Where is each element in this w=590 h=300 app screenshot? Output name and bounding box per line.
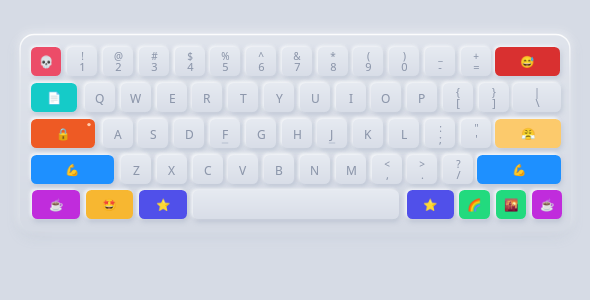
staticText: 2 (115, 59, 122, 74)
button[interactable]: # 3 (139, 47, 169, 76)
staticText: V (239, 162, 247, 178)
button[interactable]: A (103, 119, 133, 148)
button[interactable]: M (336, 155, 366, 184)
button[interactable]: R (192, 83, 222, 112)
button[interactable]: X (157, 155, 187, 184)
button[interactable]: T (228, 83, 258, 112)
staticText: [ (456, 95, 460, 110)
button[interactable]: B (264, 155, 294, 184)
button[interactable]: : ; (425, 119, 455, 148)
button[interactable]: % 5 (210, 47, 240, 76)
button[interactable]: D (174, 119, 204, 148)
button[interactable]: } ] (479, 83, 509, 112)
staticText: 7 (294, 59, 301, 74)
staticText: ☕ (540, 198, 555, 212)
button[interactable]: ? / (443, 155, 473, 184)
staticText: 🤩 (102, 198, 117, 212)
button[interactable]: @ 2 (103, 47, 133, 76)
staticText: ( (367, 49, 370, 63)
staticText: # (151, 49, 158, 63)
staticText: E (169, 90, 176, 106)
staticText: 6 (258, 59, 265, 74)
staticText: 😤 (521, 127, 536, 141)
staticText: 1 (79, 59, 86, 74)
button[interactable]: E (157, 83, 187, 112)
button[interactable]: > . (407, 155, 437, 184)
button[interactable]: Y (264, 83, 294, 112)
button[interactable]: I (336, 83, 366, 112)
staticText: % (221, 49, 230, 63)
button[interactable]: ^ 6 (246, 47, 276, 76)
button[interactable]: Coffee (32, 190, 80, 219)
staticText: ⭐ (423, 198, 438, 212)
button[interactable]: C (193, 155, 223, 184)
button[interactable]: & 7 (282, 47, 312, 76)
button[interactable]: Space (193, 190, 399, 219)
button[interactable]: Coffee (532, 190, 562, 219)
staticText: ) (403, 49, 406, 63)
button[interactable]: N (300, 155, 330, 184)
staticText: ! (81, 49, 84, 63)
staticText: / (456, 167, 461, 182)
button[interactable]: K (353, 119, 383, 148)
staticText: 3 (151, 59, 158, 74)
button[interactable]: < , (372, 155, 402, 184)
button[interactable]: Tab (31, 83, 77, 112)
staticText: 💪 (512, 163, 527, 177)
staticText: 💀 (39, 55, 54, 69)
button[interactable]: ( 9 (353, 47, 383, 76)
button[interactable]: * 8 (318, 47, 348, 76)
button[interactable]: G (246, 119, 276, 148)
button[interactable]: U (300, 83, 330, 112)
button[interactable]: H (282, 119, 312, 148)
button[interactable]: F (210, 119, 240, 148)
staticText: } (492, 85, 496, 99)
button[interactable]: Enter (495, 119, 561, 148)
button[interactable]: Q (85, 83, 115, 112)
staticText: L (401, 126, 408, 142)
staticText: ; (439, 131, 442, 146)
button[interactable]: L (389, 119, 419, 148)
button[interactable]: S (138, 119, 168, 148)
button[interactable]: P (407, 83, 437, 112)
button[interactable]: J (317, 119, 347, 148)
button[interactable]: " ' (461, 119, 491, 148)
staticText: + (473, 49, 479, 63)
button[interactable]: Favourite (139, 190, 187, 219)
button[interactable]: V (228, 155, 258, 184)
staticText: \ (535, 95, 540, 110)
button[interactable]: W (121, 83, 151, 112)
button[interactable]: + = (461, 47, 491, 76)
button[interactable]: Favourite (407, 190, 454, 219)
staticText: = (473, 59, 480, 74)
staticText: U (311, 90, 320, 106)
button[interactable]: { [ (443, 83, 473, 112)
staticText: C (204, 162, 212, 178)
button[interactable]: Sunset (496, 190, 526, 219)
button[interactable]: ) 0 (389, 47, 419, 76)
button[interactable]: Escape (31, 47, 61, 76)
staticText: 🌈 (467, 198, 482, 212)
button[interactable]: O (371, 83, 401, 112)
button[interactable]: Emoji (86, 190, 133, 219)
staticText: 8 (330, 59, 337, 74)
staticText: X (168, 162, 176, 178)
staticText: 💪 (65, 163, 80, 177)
staticText: M (346, 162, 357, 178)
button[interactable]: Shift (477, 155, 561, 184)
button[interactable]: _ - (425, 47, 455, 76)
staticText: Q (95, 90, 105, 106)
staticText: < (384, 157, 390, 171)
button[interactable]: Backspace (495, 47, 560, 76)
button[interactable]: | \ (513, 83, 561, 112)
staticText: T (240, 90, 247, 106)
button[interactable]: Shift (31, 155, 114, 184)
button[interactable]: ! 1 (67, 47, 97, 76)
button[interactable]: Z (121, 155, 151, 184)
staticText: P (418, 90, 426, 106)
button[interactable]: Rainbow (459, 190, 490, 219)
staticText: D (185, 126, 194, 142)
button[interactable]: Caps lock (31, 119, 95, 148)
staticText: { (456, 85, 460, 99)
button[interactable]: $ 4 (175, 47, 205, 76)
